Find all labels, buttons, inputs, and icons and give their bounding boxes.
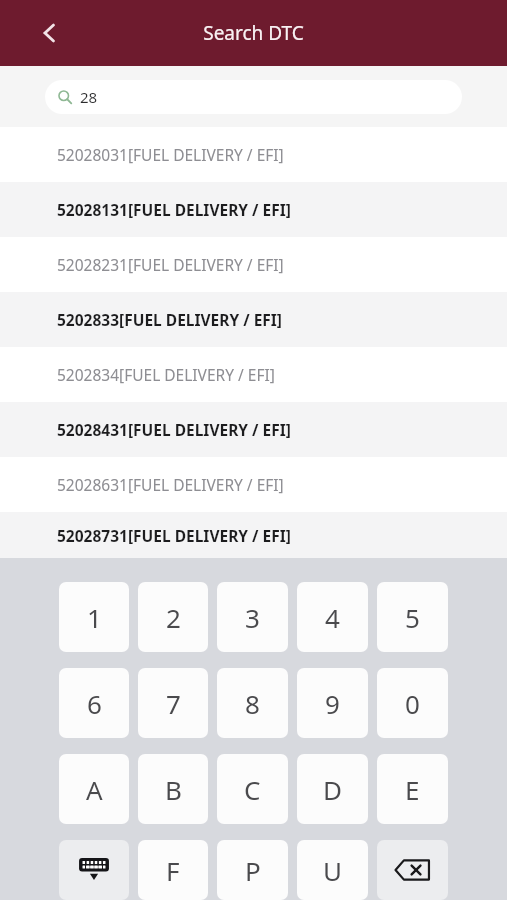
staticText: 5202834[FUEL DELIVERY / EFI] xyxy=(57,364,275,385)
button[interactable]: U xyxy=(297,840,368,900)
staticText: Search DTC xyxy=(203,20,304,46)
staticText: 52028131[FUEL DELIVERY / EFI] xyxy=(57,199,291,220)
staticText: 2 xyxy=(166,600,181,635)
staticText: 0 xyxy=(405,686,420,721)
button[interactable]: 4 xyxy=(297,582,368,652)
staticText: 3 xyxy=(245,600,260,635)
staticText: 8 xyxy=(245,686,260,721)
staticText: D xyxy=(323,772,342,807)
button[interactable]: 5 xyxy=(377,582,448,652)
button[interactable]: F xyxy=(138,840,208,900)
button[interactable]: Backspace xyxy=(377,840,448,900)
button[interactable]: 8 xyxy=(217,668,288,738)
staticText: F xyxy=(166,853,180,888)
button[interactable]: 3 xyxy=(217,582,288,652)
button[interactable]: 52028731[FUEL DELIVERY / EFI] xyxy=(0,512,507,558)
button[interactable]: 28 xyxy=(45,80,462,114)
staticText: 9 xyxy=(325,686,340,721)
staticText: 52028731[FUEL DELIVERY / EFI] xyxy=(57,525,291,546)
button[interactable]: C xyxy=(217,754,288,824)
button[interactable]: B xyxy=(138,754,208,824)
staticText: 52028231[FUEL DELIVERY / EFI] xyxy=(57,254,284,275)
button[interactable]: 52028031[FUEL DELIVERY / EFI] xyxy=(0,127,507,182)
staticText: 1 xyxy=(87,600,102,635)
button[interactable]: P xyxy=(217,840,288,900)
staticText: B xyxy=(165,772,182,807)
button[interactable]: Back xyxy=(26,9,74,57)
staticText: 5202833[FUEL DELIVERY / EFI] xyxy=(57,309,282,330)
button[interactable]: Hide keyboard xyxy=(59,840,129,900)
staticText: 4 xyxy=(325,600,340,635)
staticText: C xyxy=(244,772,261,807)
staticText: 52028631[FUEL DELIVERY / EFI] xyxy=(57,474,284,495)
button[interactable]: 1 xyxy=(59,582,129,652)
staticText: 6 xyxy=(87,686,102,721)
staticText: P xyxy=(245,853,261,888)
button[interactable]: A xyxy=(59,754,129,824)
staticText: 52028431[FUEL DELIVERY / EFI] xyxy=(57,419,291,440)
button[interactable]: 6 xyxy=(59,668,129,738)
button[interactable]: D xyxy=(297,754,368,824)
button[interactable]: 52028631[FUEL DELIVERY / EFI] xyxy=(0,457,507,512)
button[interactable]: E xyxy=(377,754,448,824)
staticText: 7 xyxy=(166,686,181,721)
button[interactable]: 52028431[FUEL DELIVERY / EFI] xyxy=(0,402,507,457)
staticText: U xyxy=(323,853,343,888)
button[interactable]: 5202834[FUEL DELIVERY / EFI] xyxy=(0,347,507,402)
button[interactable]: 52028131[FUEL DELIVERY / EFI] xyxy=(0,182,507,237)
staticText: A xyxy=(86,772,103,807)
button[interactable]: 7 xyxy=(138,668,208,738)
button[interactable]: 2 xyxy=(138,582,208,652)
button[interactable]: 52028231[FUEL DELIVERY / EFI] xyxy=(0,237,507,292)
button[interactable]: 5202833[FUEL DELIVERY / EFI] xyxy=(0,292,507,347)
button[interactable]: 9 xyxy=(297,668,368,738)
staticText: 52028031[FUEL DELIVERY / EFI] xyxy=(57,144,284,165)
button[interactable]: 0 xyxy=(377,668,448,738)
staticText: 28 xyxy=(80,87,98,107)
staticText: E xyxy=(405,772,420,807)
staticText: 5 xyxy=(405,600,420,635)
